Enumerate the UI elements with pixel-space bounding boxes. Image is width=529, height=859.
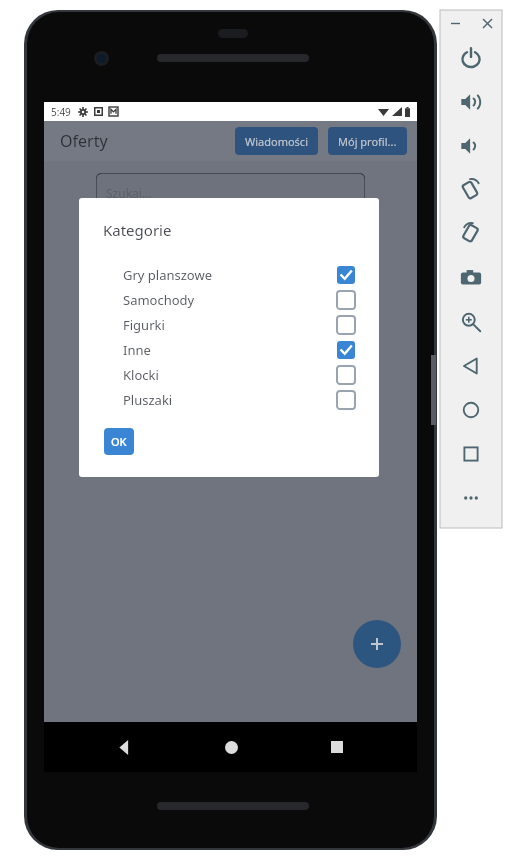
staticText: Mój profil... (338, 134, 397, 149)
button[interactable]: Klocki (79, 362, 379, 387)
staticText: Fidget Spinner (176, 302, 226, 338)
button[interactable]: Close (479, 15, 495, 31)
button[interactable]: Power (440, 36, 502, 80)
staticText: Figurki (123, 316, 165, 334)
button[interactable]: max (230, 242, 365, 282)
staticText: Gry planszowe (123, 266, 213, 284)
button[interactable]: Fidget Spinner (96, 294, 365, 374)
button[interactable]: Back (440, 344, 502, 388)
staticText: 15.99zł (313, 398, 353, 414)
staticText: Samochody (123, 291, 195, 309)
button[interactable]: Rotate right (440, 212, 502, 256)
button[interactable]: Overview (440, 432, 502, 476)
button[interactable]: Back (110, 733, 138, 761)
button[interactable]: Samochodzik (96, 390, 365, 470)
staticText: Szukaj... (106, 185, 152, 201)
button[interactable]: More (440, 476, 502, 520)
button[interactable]: Home (217, 733, 245, 761)
staticText: Wiadomości (245, 134, 308, 149)
staticText: Pluszaki (123, 391, 173, 409)
button[interactable]: Home (440, 388, 502, 432)
button[interactable]: OK (104, 428, 134, 455)
button[interactable]: Gry planszowe (79, 262, 379, 287)
button[interactable]: Volume down (440, 124, 502, 168)
button[interactable]: Wiadomości (235, 127, 318, 155)
button[interactable]: Rotate left (440, 168, 502, 212)
staticText: Inne (123, 341, 151, 359)
button[interactable]: Zoom (440, 300, 502, 344)
staticText: Cena... (98, 221, 137, 237)
staticText: Kategorie (103, 220, 172, 240)
button[interactable]: Pluszaki (79, 387, 379, 412)
button[interactable]: Mój profil... (328, 127, 407, 155)
staticText: OK (111, 434, 127, 449)
button[interactable]: Recents (323, 733, 351, 761)
staticText: Oferty (60, 130, 108, 152)
button[interactable]: Volume up (440, 80, 502, 124)
button[interactable]: Inne (79, 337, 379, 362)
button[interactable]: Add offer (353, 620, 401, 668)
button[interactable]: Samochody (79, 287, 379, 312)
button[interactable]: Take screenshot (440, 256, 502, 300)
button[interactable]: Szukaj... (96, 173, 365, 213)
button[interactable]: Figurki (79, 312, 379, 337)
staticText: 5zł (337, 302, 353, 318)
staticText: 5:49 (51, 105, 71, 119)
button[interactable]: Minimize (447, 15, 463, 31)
staticText: Klocki (123, 366, 159, 384)
button[interactable]: min (96, 242, 230, 282)
